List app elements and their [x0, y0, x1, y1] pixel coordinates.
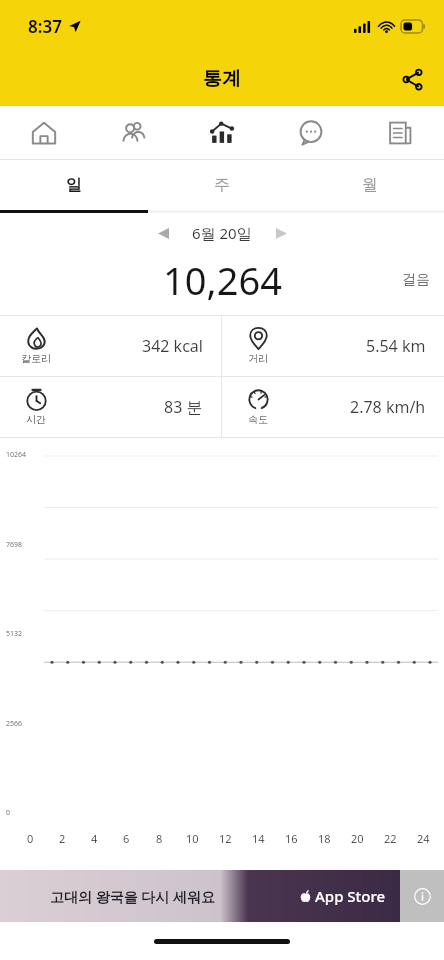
staticText: 거리 [248, 352, 268, 365]
staticText: 걸음 [402, 271, 430, 289]
staticText: 342 kcal [142, 335, 203, 357]
button[interactable]: News [355, 106, 444, 159]
staticText: 2566 [6, 719, 23, 729]
staticText: 16 [285, 831, 298, 846]
button[interactable]: 거리 [222, 316, 444, 376]
staticText: 시간 [26, 413, 46, 426]
button[interactable]: Friends [88, 106, 177, 159]
staticText: 월 [362, 175, 378, 195]
staticText: 5132 [6, 629, 23, 639]
button[interactable]: Ad info [400, 870, 444, 922]
button[interactable]: Previous day [146, 216, 180, 250]
staticText: 8 [156, 831, 163, 846]
staticText: 0 [27, 831, 34, 846]
button[interactable]: 주 [148, 160, 296, 210]
staticText: 83 분 [164, 396, 203, 418]
staticText: 6 [123, 831, 130, 846]
staticText: 8:37 [28, 15, 62, 38]
button[interactable]: 월 [296, 160, 444, 210]
staticText: 14 [252, 831, 265, 846]
staticText: 주 [214, 175, 230, 195]
staticText: 2.78 km/h [350, 396, 426, 418]
staticText: 통계 [203, 67, 241, 91]
staticText: 10264 [6, 450, 27, 460]
staticText: 22 [384, 831, 397, 846]
staticText: 18 [318, 831, 331, 846]
staticText: 10 [186, 831, 199, 846]
button[interactable]: Chat [266, 106, 355, 159]
staticText: 2 [59, 831, 66, 846]
staticText: 12 [219, 831, 232, 846]
staticText: 고대의 왕국을 다시 세워요 [50, 887, 215, 906]
button[interactable]: Home [0, 106, 88, 159]
staticText: 일 [66, 175, 82, 195]
staticText: App Store [315, 886, 386, 906]
staticText: 4 [91, 831, 98, 846]
staticText: 0 [6, 808, 11, 818]
button[interactable]: 시간 [0, 377, 221, 437]
button[interactable]: Share [390, 57, 434, 101]
staticText: 7698 [6, 540, 23, 550]
staticText: 속도 [248, 413, 268, 426]
button[interactable]: 고대의 왕국을 다시 세워요 [0, 870, 444, 922]
button[interactable]: 일 [0, 160, 148, 210]
staticText: 6월 20일 [192, 223, 252, 243]
staticText: 칼로리 [21, 352, 51, 365]
button[interactable]: 속도 [222, 377, 444, 437]
staticText: 20 [351, 831, 364, 846]
staticText: 5.54 km [366, 335, 426, 357]
staticText: 10,264 [163, 254, 282, 306]
button[interactable]: 칼로리 [0, 316, 221, 376]
staticText: 24 [417, 831, 430, 846]
button[interactable]: Statistics [177, 106, 266, 159]
button[interactable]: Next day [264, 216, 298, 250]
